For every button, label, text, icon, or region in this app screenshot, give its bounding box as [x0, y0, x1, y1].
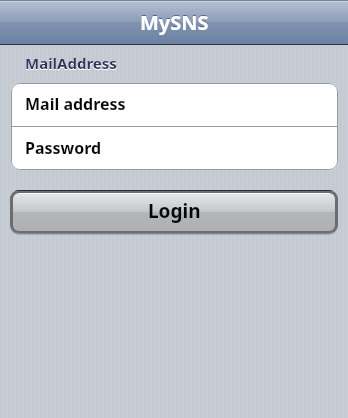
staticText: Mail address [25, 93, 126, 115]
staticText: Password [25, 137, 102, 159]
staticText: MySNS [140, 9, 209, 36]
staticText: Login [148, 198, 201, 224]
button[interactable]: Mail address [11, 83, 338, 126]
button[interactable]: Password [11, 127, 338, 170]
staticText: MailAddress [25, 53, 117, 73]
button[interactable]: Login [10, 190, 338, 235]
